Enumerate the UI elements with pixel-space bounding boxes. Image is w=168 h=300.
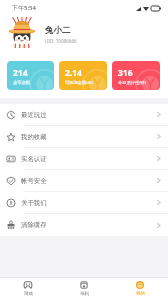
staticText: 今日累计(分钟) xyxy=(118,80,146,86)
button[interactable]: 316 xyxy=(112,61,160,90)
staticText: 最近玩过 xyxy=(21,111,47,119)
button[interactable]: 我的收藏 xyxy=(0,126,168,148)
staticText: UID: 10086666 xyxy=(45,38,77,44)
button[interactable]: 兔小二 xyxy=(6,16,168,61)
staticText: 我的 xyxy=(136,291,145,297)
staticText: 2.14 xyxy=(65,67,82,79)
button[interactable]: 2.14 xyxy=(59,61,107,90)
button[interactable]: 帐号安全 xyxy=(0,170,168,192)
staticText: 兔小二 xyxy=(45,25,71,36)
staticText: 316 xyxy=(118,67,133,79)
button[interactable]: 最近玩过 xyxy=(0,104,168,126)
staticText: 福利 xyxy=(80,291,89,297)
staticText: 下午5:54 xyxy=(12,4,36,12)
button[interactable]: Mine xyxy=(112,278,168,300)
staticText: 清除缓存 xyxy=(21,221,47,229)
staticText: 金币余额 xyxy=(13,80,30,85)
staticText: 帐号安全 xyxy=(21,177,47,185)
button[interactable]: Games xyxy=(0,278,56,300)
staticText: 游戏 xyxy=(24,291,33,297)
staticText: 关于我们 xyxy=(21,199,47,207)
staticText: 214 xyxy=(13,67,28,79)
staticText: 可提现金额(元) xyxy=(65,80,93,86)
button[interactable]: 214 xyxy=(7,61,54,90)
staticText: 实名认证 xyxy=(21,155,47,163)
button[interactable]: 清除缓存 xyxy=(0,214,168,236)
button[interactable]: Benefits xyxy=(56,278,112,300)
button[interactable]: 实名认证 xyxy=(0,148,168,170)
staticText: 我的收藏 xyxy=(21,133,47,141)
button[interactable]: 关于我们 xyxy=(0,192,168,214)
